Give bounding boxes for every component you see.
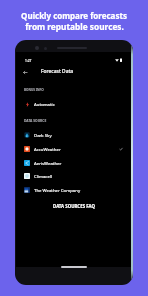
button[interactable]: Climacell xyxy=(16,169,131,183)
staticText: Quickly compare forecasts xyxy=(21,10,127,21)
staticText: Automatic xyxy=(34,101,55,107)
button[interactable]: DATA SOURCES FAQ xyxy=(48,200,100,212)
staticText: DATA SOURCES FAQ xyxy=(53,203,95,209)
button[interactable]: AccuWeather xyxy=(16,142,131,156)
staticText: Forecast Data xyxy=(41,68,74,75)
staticText: Climacell xyxy=(34,173,53,179)
staticText: AerisWeather xyxy=(34,160,62,166)
staticText: 1:27 xyxy=(25,59,32,63)
button[interactable]: The Weather Company xyxy=(16,183,131,197)
button[interactable]: Back xyxy=(20,67,31,78)
button[interactable]: Dark Sky xyxy=(16,128,131,142)
staticText: BONUS INFO xyxy=(24,88,44,92)
button[interactable]: Automatic xyxy=(16,97,131,111)
staticText: DATA SOURCE xyxy=(24,118,47,122)
staticText: from reputable sources. xyxy=(25,21,124,32)
staticText: AccuWeather xyxy=(34,146,61,152)
button[interactable]: AerisWeather xyxy=(16,156,131,170)
staticText: The Weather Company xyxy=(34,187,81,193)
staticText: Dark Sky xyxy=(34,132,52,138)
